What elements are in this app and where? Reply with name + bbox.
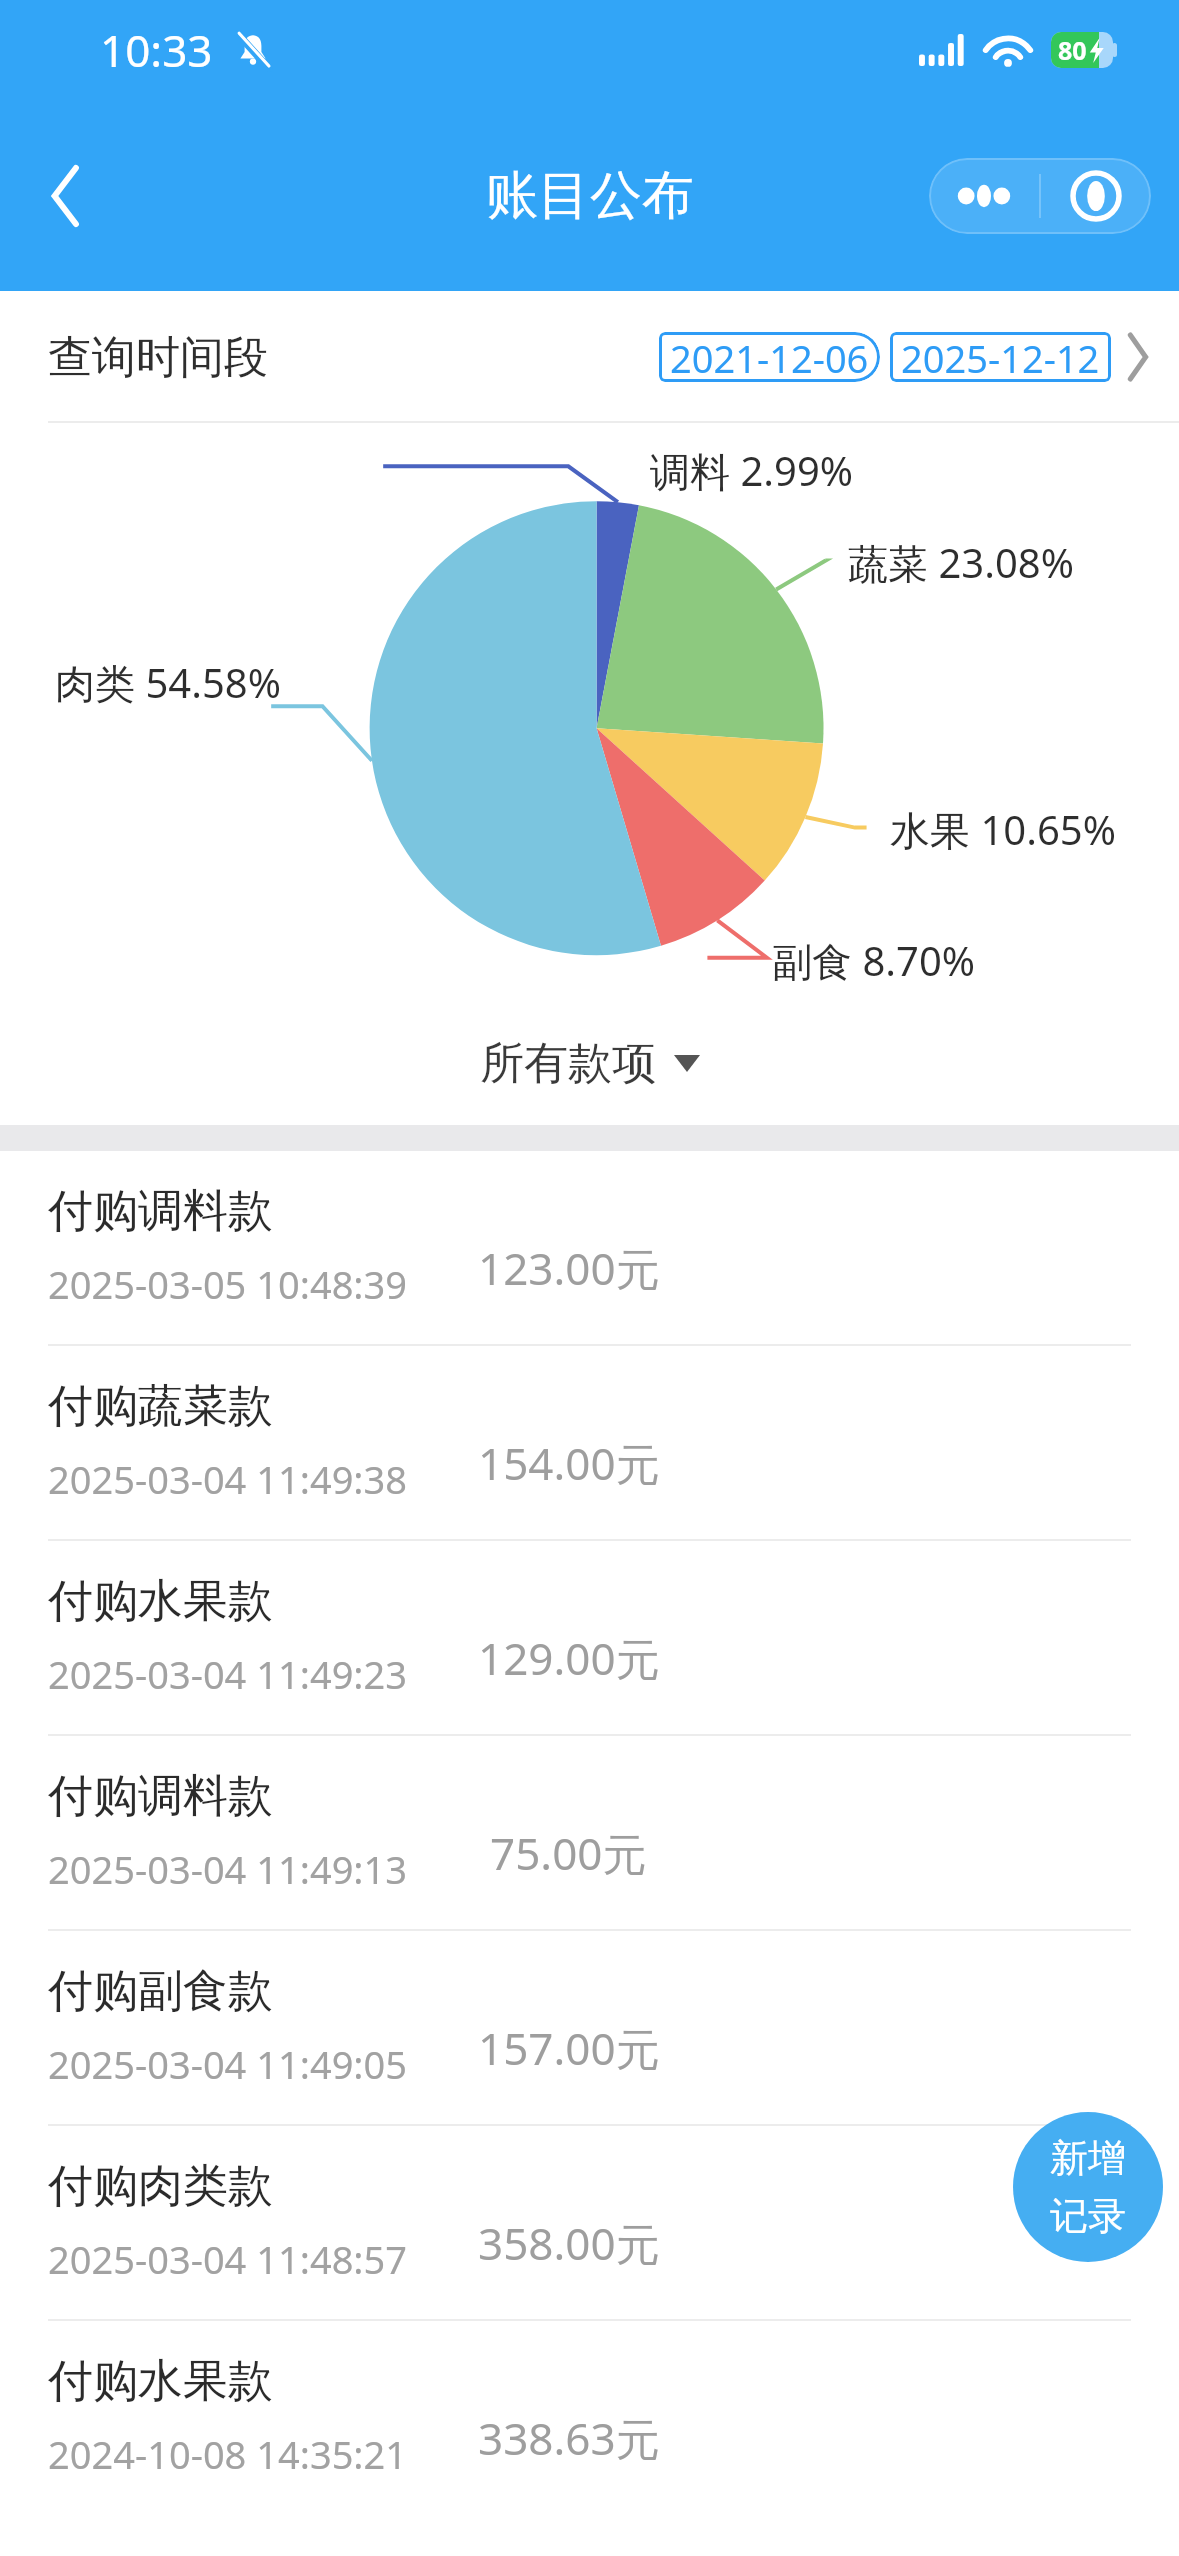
button[interactable]: 所有款项 — [0, 1001, 1179, 1125]
button[interactable]: Close — [1041, 158, 1151, 234]
staticText: 2025-03-04 11:48:57 — [48, 2233, 408, 2285]
staticText: 358.00元 — [478, 2213, 660, 2273]
staticText: 付购肉类款 — [48, 2158, 273, 2215]
staticText: 蔬菜 23.08% — [848, 535, 1074, 590]
staticText: 所有款项 — [480, 1036, 656, 1091]
staticText: 付购调料款 — [48, 1768, 273, 1825]
staticText: 付购副食款 — [48, 1963, 273, 2020]
staticText: 付购调料款 — [48, 1183, 273, 1240]
staticText: 账目公布 — [486, 163, 694, 229]
staticText: 肉类 54.58% — [55, 655, 281, 710]
staticText: 2025-03-05 10:48:39 — [48, 1258, 408, 1310]
button[interactable]: 付购副食款 — [0, 1931, 1179, 2126]
staticText: 2024-10-08 14:35:21 — [48, 2428, 408, 2480]
staticText: 154.00元 — [478, 1433, 660, 1493]
button[interactable]: 付购调料款 — [0, 1151, 1179, 1346]
staticText: 新增 — [1050, 2134, 1126, 2182]
staticText: 付购水果款 — [48, 1573, 273, 1630]
button[interactable]: 新增 — [1013, 2112, 1163, 2262]
staticText: 123.00元 — [478, 1238, 660, 1298]
staticText: 水果 10.65% — [890, 802, 1116, 857]
staticText: 80 — [1058, 33, 1087, 67]
button[interactable]: Back — [0, 100, 130, 291]
staticText: 付购水果款 — [48, 2353, 273, 2410]
staticText: 10:33 — [100, 20, 213, 80]
staticText: 2025-03-04 11:49:23 — [48, 1648, 408, 1700]
staticText: 2021-12-06 — [670, 332, 869, 382]
staticText: 副食 8.70% — [772, 933, 975, 988]
staticText: 查询时间段 — [48, 330, 268, 385]
button[interactable]: 付购蔬菜款 — [0, 1346, 1179, 1541]
staticText: 157.00元 — [478, 2018, 660, 2078]
staticText: 2025-12-12 — [901, 332, 1100, 382]
staticText: 75.00元 — [490, 1823, 647, 1883]
button[interactable]: More — [929, 158, 1039, 234]
button[interactable]: 付购肉类款 — [0, 2126, 1179, 2321]
button[interactable]: 付购水果款 — [0, 2321, 1179, 2516]
staticText: 付购蔬菜款 — [48, 1378, 273, 1435]
staticText: 338.63元 — [478, 2408, 660, 2468]
staticText: 2025-03-04 11:49:38 — [48, 1453, 408, 1505]
staticText: 2025-03-04 11:49:05 — [48, 2038, 408, 2090]
button[interactable]: 付购水果款 — [0, 1541, 1179, 1736]
staticText: 2025-03-04 11:49:13 — [48, 1843, 408, 1895]
staticText: 调料 2.99% — [650, 443, 853, 498]
staticText: 129.00元 — [478, 1628, 660, 1688]
staticText: 记录 — [1050, 2192, 1126, 2240]
button[interactable]: 查询时间段 — [0, 291, 1179, 423]
button[interactable]: 付购调料款 — [0, 1736, 1179, 1931]
